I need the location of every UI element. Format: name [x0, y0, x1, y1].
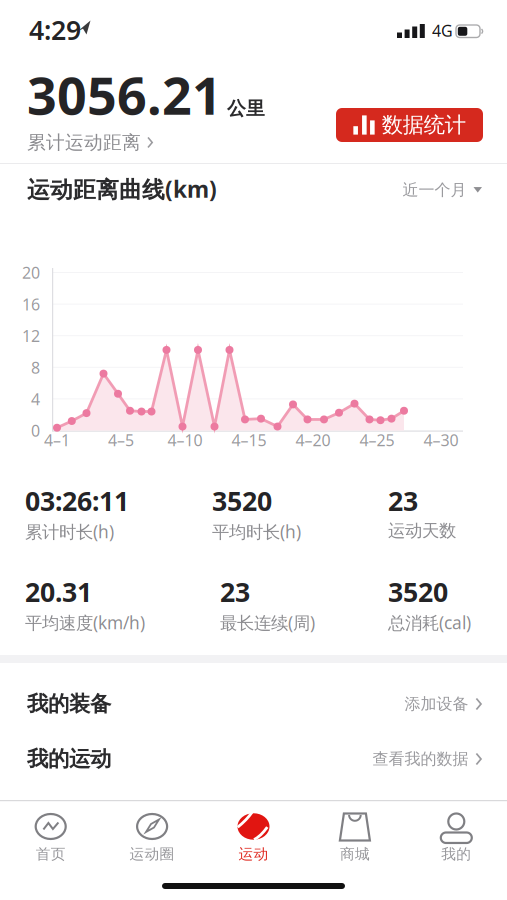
staticText: 我的装备	[27, 691, 111, 717]
staticText: 4–1	[44, 429, 70, 451]
staticText: 20	[22, 262, 40, 283]
staticText: 总消耗(cal)	[388, 611, 471, 634]
staticText: 运动	[238, 845, 268, 863]
staticText: 3520	[388, 574, 448, 609]
button[interactable]: 运动	[203, 801, 304, 873]
staticText: 运动天数	[388, 520, 456, 541]
staticText: 4–25	[359, 429, 394, 451]
staticText: 公里	[227, 97, 265, 120]
staticText: 4–10	[167, 429, 202, 451]
staticText: 查看我的数据	[372, 749, 468, 769]
staticText: 首页	[36, 845, 66, 863]
staticText: 商城	[340, 845, 370, 863]
staticText: 4G	[432, 20, 453, 41]
button[interactable]: 近一个月	[372, 180, 482, 200]
staticText: 8	[31, 357, 40, 378]
staticText: 累计时长(h)	[25, 520, 114, 543]
button[interactable]: 我的	[406, 801, 507, 873]
button[interactable]: 商城	[304, 801, 406, 873]
staticText: 最长连续(周)	[220, 611, 315, 634]
staticText: 4	[31, 388, 40, 410]
staticText: 16	[22, 294, 40, 315]
staticText: 近一个月	[402, 180, 466, 200]
staticText: 23	[220, 574, 250, 609]
staticText: 平均时长(h)	[212, 520, 301, 543]
staticText: 我的	[441, 845, 471, 863]
staticText: 4–30	[423, 429, 458, 451]
button[interactable]: 数据统计	[336, 108, 483, 142]
staticText: 23	[388, 483, 418, 518]
staticText: 03:26:11	[25, 483, 129, 518]
staticText: 12	[22, 325, 40, 346]
staticText: 运动距离曲线(km)	[27, 174, 217, 204]
staticText: 3056.21	[27, 60, 222, 129]
button[interactable]: 运动圈	[101, 801, 203, 873]
button[interactable]: 累计运动距离	[27, 131, 154, 154]
staticText: 3520	[212, 483, 272, 518]
staticText: 4–15	[231, 429, 266, 451]
staticText: 4–20	[295, 429, 330, 451]
staticText: 累计运动距离	[27, 131, 141, 154]
staticText: 0	[31, 420, 40, 441]
staticText: 20.31	[25, 574, 92, 609]
button[interactable]: 我的装备	[27, 689, 483, 719]
button[interactable]: 首页	[0, 801, 101, 873]
staticText: 我的运动	[27, 746, 111, 772]
button[interactable]: 我的运动	[27, 744, 483, 774]
staticText: 数据统计	[382, 112, 466, 138]
staticText: 4–5	[108, 429, 134, 451]
staticText: 4:29	[29, 12, 81, 47]
staticText: 平均速度(km/h)	[25, 611, 145, 634]
staticText: 添加设备	[404, 694, 468, 714]
staticText: 运动圈	[130, 845, 175, 863]
